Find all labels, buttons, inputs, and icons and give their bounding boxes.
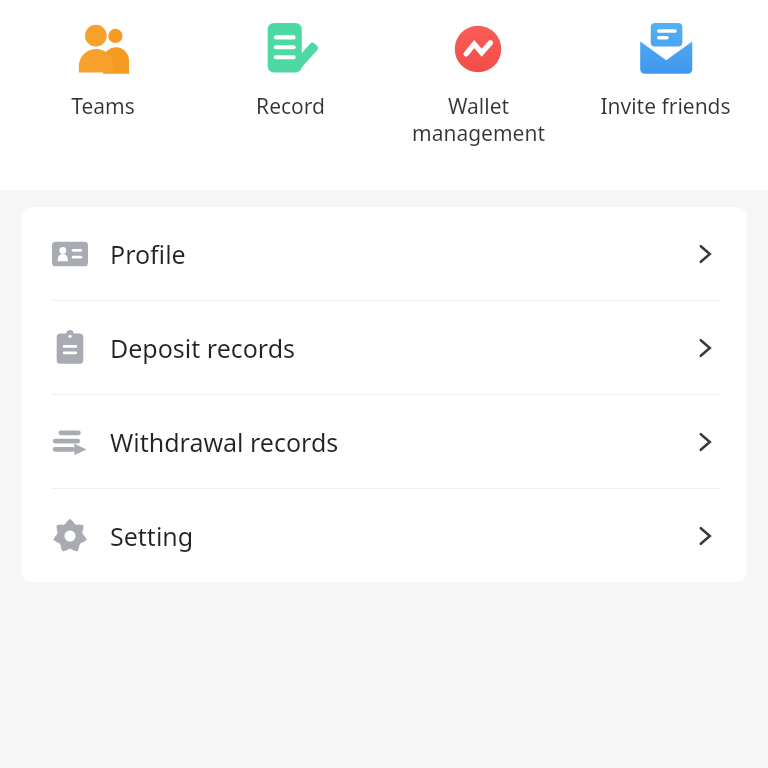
button[interactable]: Wallet management bbox=[394, 12, 562, 147]
staticText: Setting bbox=[110, 519, 194, 553]
other: Record bbox=[259, 18, 321, 80]
button[interactable]: Setting bbox=[21, 489, 747, 582]
other: Invite friends bbox=[634, 18, 696, 80]
other: Wallet management bbox=[447, 18, 509, 80]
button[interactable]: Teams bbox=[19, 12, 187, 121]
staticText: Withdrawal records bbox=[110, 425, 339, 459]
staticText: Profile bbox=[110, 237, 186, 271]
button[interactable]: Invite friends bbox=[581, 12, 749, 121]
button[interactable]: Deposit records bbox=[21, 301, 747, 394]
staticText: Deposit records bbox=[110, 331, 296, 365]
button[interactable]: Withdrawal records bbox=[21, 395, 747, 488]
button[interactable]: Profile bbox=[21, 207, 747, 300]
staticText: Teams bbox=[71, 92, 135, 121]
staticText: Invite friends bbox=[600, 92, 731, 121]
other: Teams bbox=[72, 18, 134, 80]
button[interactable]: Record bbox=[206, 12, 374, 121]
staticText: Wallet management bbox=[412, 92, 545, 147]
staticText: Record bbox=[256, 92, 325, 121]
